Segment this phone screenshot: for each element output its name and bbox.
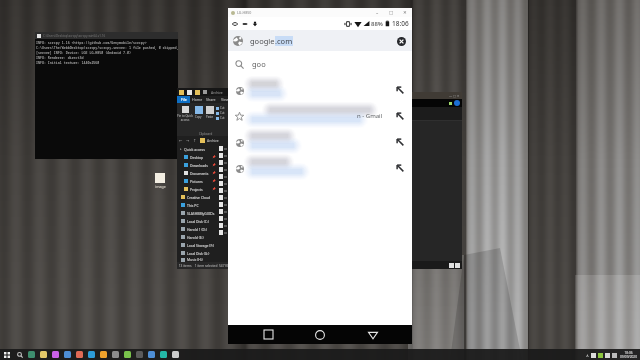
button[interactable]: SLASHBMyGUIDs (181, 209, 217, 217)
staticText: Pin to Quick access (177, 114, 193, 122)
staticText: ∧ (586, 353, 589, 358)
staticText: 📌 (212, 171, 216, 175)
staticText: → (186, 138, 190, 143)
button[interactable]: This PC (181, 201, 217, 209)
staticText: google (250, 36, 275, 46)
button[interactable]: Taskbar app (88, 351, 95, 358)
button[interactable]: Taskbar app (100, 351, 107, 358)
staticText: Archive (207, 138, 219, 143)
staticText: Copy (195, 115, 202, 119)
button[interactable]: Taskbar app (136, 351, 143, 358)
staticText: Cut (220, 111, 225, 115)
staticText: 18:06 (392, 19, 409, 28)
button[interactable]: Taskbar app (148, 351, 155, 358)
button[interactable]: Taskbar app (160, 351, 167, 358)
button[interactable]: Use suggestion (391, 133, 409, 151)
staticText: Share (206, 97, 216, 102)
staticText: ← (179, 138, 183, 143)
button[interactable]: Close (398, 8, 412, 17)
button[interactable]: Projects (184, 185, 217, 193)
staticText: Paste (206, 115, 214, 119)
staticText: 18:06 09/09/2020 (620, 351, 637, 359)
staticText: Creative Cloud Files (187, 195, 217, 200)
button[interactable]: Home (307, 325, 333, 344)
button[interactable]: Local Disk (C:) (181, 217, 217, 225)
button[interactable]: Use suggestion (391, 107, 409, 125)
button[interactable]: Use suggestion (391, 159, 409, 177)
staticText: Documents (190, 171, 209, 176)
button[interactable]: goo (228, 51, 412, 77)
staticText: Projects (190, 187, 203, 192)
button[interactable]: Maximize (384, 8, 398, 17)
button[interactable]: Home (190, 96, 204, 103)
staticText: Clipboard (199, 132, 213, 136)
button[interactable]: Taskbar app (112, 351, 119, 358)
button[interactable]: Taskbar app (124, 351, 131, 358)
staticText: 13 items 1 item selected 547 KB (177, 264, 230, 268)
button[interactable]: Pictures (184, 177, 217, 185)
button[interactable]: Share (204, 96, 218, 103)
button[interactable]: Desktop file (149, 173, 171, 189)
button[interactable]: n - Gmail (228, 103, 412, 129)
button[interactable]: Back (360, 325, 386, 344)
staticText: □ (389, 10, 394, 15)
button[interactable]: Taskbar app (40, 351, 47, 358)
button[interactable]: Search (16, 351, 23, 358)
staticText: Local Disk (C:) (187, 219, 209, 224)
button[interactable]: Local Storage (F:) (181, 241, 217, 249)
staticText: Harold 1 (D:) (187, 227, 207, 232)
button[interactable]: Harold 1 (D:) (181, 225, 217, 233)
button[interactable]: Music (H:) (181, 257, 217, 262)
button[interactable]: google (228, 30, 412, 51)
button[interactable]: Downloads (184, 161, 217, 169)
button[interactable]: Use suggestion (391, 81, 409, 99)
staticText: 📌 (212, 155, 216, 159)
button[interactable]: Desktop (184, 153, 217, 161)
button[interactable]: Taskbar app (28, 351, 35, 358)
button[interactable]: Documents (184, 169, 217, 177)
staticText: 📌 (212, 179, 216, 183)
staticText: 📌 (212, 187, 216, 191)
button[interactable]: Taskbar app (172, 351, 179, 358)
button[interactable]: Local Disk (G:) (181, 249, 217, 257)
staticText: – (376, 10, 379, 16)
staticText: C:\Users\Desktop\scrcpy\scrcpy-win64-v1.… (43, 34, 106, 38)
button[interactable]: Taskbar app (64, 351, 71, 358)
button[interactable]: Clear text (393, 33, 409, 49)
staticText: — □ ✕ (449, 94, 460, 98)
button[interactable]: Minimize (370, 8, 384, 17)
staticText: Quick access (184, 147, 205, 152)
button[interactable]: Taskbar app (52, 351, 59, 358)
staticText: .com (275, 36, 293, 46)
staticText: ✕ (403, 10, 407, 15)
staticText: Cut (220, 116, 225, 120)
staticText: image (155, 184, 166, 189)
button[interactable]: File (177, 96, 190, 103)
button[interactable]: Start (3, 351, 10, 358)
staticText: goo (252, 59, 266, 69)
staticText: INFO: scrcpy 1.16 <https://github.com/Ge… (36, 40, 178, 65)
staticText: Music (H:) (187, 257, 203, 262)
staticText: View (221, 97, 229, 102)
staticText: Home (192, 97, 203, 102)
staticText: Archive (211, 90, 223, 95)
button[interactable]: Creative Cloud Files (181, 193, 217, 201)
staticText: 📌 (212, 163, 216, 167)
staticText: SLASHBMyGUIDs (187, 211, 215, 216)
button[interactable]: Taskbar app (76, 351, 83, 358)
staticText: 88% (371, 20, 383, 28)
staticText: ↑ (193, 138, 197, 143)
button[interactable]: Use suggestion (228, 155, 412, 181)
button[interactable]: Recent apps (255, 325, 281, 344)
button[interactable]: View (218, 96, 232, 103)
staticText: This PC (187, 203, 199, 208)
staticText: ▸ (180, 147, 182, 151)
button[interactable]: Harold (E:) (181, 233, 217, 241)
staticText: Pictures (190, 179, 203, 184)
staticText: Desktop (190, 155, 204, 160)
staticText: LG-H850 (237, 10, 252, 15)
staticText: Cut (220, 106, 225, 110)
button[interactable]: Use suggestion (228, 129, 412, 155)
button[interactable]: Use suggestion (228, 77, 412, 103)
staticText: File (181, 97, 187, 102)
